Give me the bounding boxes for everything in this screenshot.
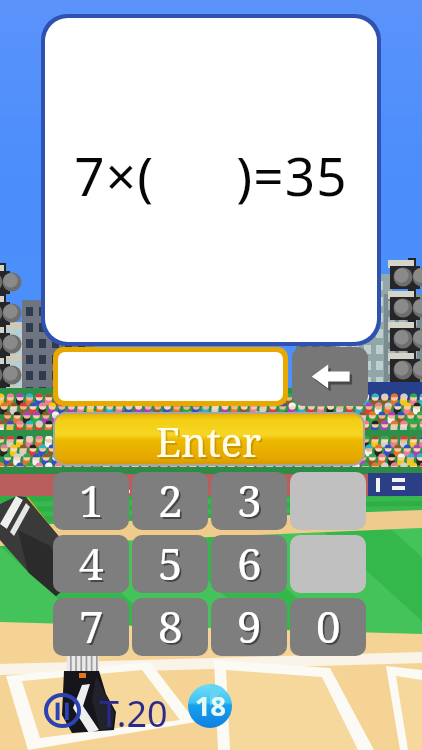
- button[interactable]: 8: [132, 598, 208, 656]
- button[interactable]: 6: [211, 535, 287, 593]
- staticText: Enter: [158, 416, 264, 464]
- staticText: 3: [239, 472, 264, 530]
- staticText: 6: [239, 535, 264, 593]
- staticText: 9: [239, 598, 264, 656]
- staticText: 4: [79, 535, 104, 591]
- button[interactable]: 5: [132, 535, 208, 593]
- button[interactable]: 0: [290, 598, 366, 656]
- button[interactable]: 4: [53, 535, 129, 593]
- staticText: 8: [160, 598, 185, 656]
- button[interactable]: Pause: [44, 693, 81, 728]
- button[interactable]: 9: [211, 598, 287, 656]
- staticText: 6: [237, 535, 262, 591]
- staticText: 7×( )=35: [74, 139, 348, 211]
- staticText: 1: [79, 472, 104, 528]
- button[interactable]: Answer: [58, 352, 283, 401]
- staticText: 0: [318, 598, 343, 656]
- button[interactable]: [290, 535, 366, 593]
- button[interactable]: 7: [53, 598, 129, 656]
- staticText: 18: [195, 687, 226, 724]
- staticText: 2: [158, 472, 183, 528]
- staticText: T.20: [99, 689, 168, 738]
- button[interactable]: [290, 472, 366, 530]
- button[interactable]: 3: [211, 472, 287, 530]
- staticText: Enter: [156, 414, 262, 464]
- button[interactable]: 1: [53, 472, 129, 530]
- staticText: 8: [158, 598, 183, 654]
- staticText: 1: [81, 472, 106, 530]
- staticText: 5: [160, 535, 185, 593]
- staticText: 2: [160, 472, 185, 530]
- staticText: 7: [79, 598, 104, 654]
- staticText: 7: [81, 598, 106, 656]
- button[interactable]: Enter: [55, 414, 363, 464]
- button[interactable]: 2: [132, 472, 208, 530]
- staticText: 9: [237, 598, 262, 654]
- staticText: 4: [81, 535, 106, 593]
- button[interactable]: Backspace: [292, 347, 368, 406]
- staticText: 3: [237, 472, 262, 528]
- staticText: 5: [158, 535, 183, 591]
- staticText: 0: [316, 598, 341, 654]
